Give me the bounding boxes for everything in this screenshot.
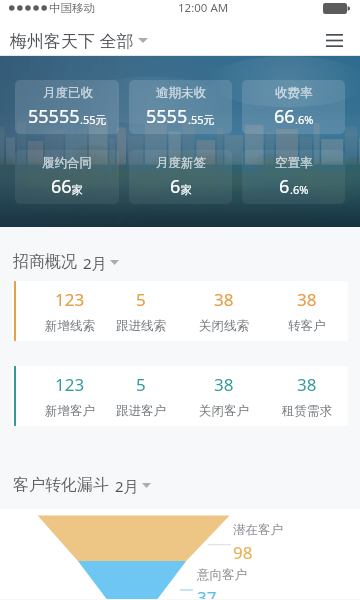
button[interactable]: 2月 xyxy=(115,474,151,496)
button[interactable]: 38 xyxy=(182,373,265,419)
button[interactable]: 38 xyxy=(265,288,348,334)
staticText: 月度已收 xyxy=(43,85,93,101)
staticText: 中国移动 xyxy=(49,1,95,15)
staticText: 38 xyxy=(297,288,317,311)
staticText: 逾期未收 xyxy=(156,85,206,101)
staticText: 家 xyxy=(72,183,83,197)
staticText: 66 xyxy=(51,174,72,199)
staticText: 6 xyxy=(170,174,181,199)
button[interactable]: 38 xyxy=(265,373,348,419)
staticText: 38 xyxy=(214,373,234,396)
staticText: 客户转化漏斗 xyxy=(13,475,109,495)
staticText: .55元 xyxy=(188,112,215,127)
staticText: 38 xyxy=(297,373,317,396)
staticText: 2月 xyxy=(83,253,107,271)
staticText: 37 xyxy=(197,586,217,599)
button[interactable]: 38 xyxy=(182,288,265,334)
staticText: 123 xyxy=(55,373,85,396)
staticText: .6% xyxy=(295,112,314,127)
staticText: 关闭线索 xyxy=(199,318,249,334)
button[interactable]: 月度新签 xyxy=(129,150,232,204)
staticText: 月度新签 xyxy=(156,155,206,171)
staticText: 12:00 AM xyxy=(178,0,229,16)
staticText: 家 xyxy=(181,183,192,197)
staticText: 123 xyxy=(55,288,85,311)
staticText: 跟进客户 xyxy=(116,403,166,419)
staticText: 新增客户 xyxy=(45,403,95,419)
button[interactable]: 5 xyxy=(99,288,182,334)
staticText: 履约合同 xyxy=(42,155,92,171)
button[interactable]: 5 xyxy=(99,373,182,419)
staticText: 招商概况 xyxy=(13,252,77,272)
staticText: 收费率 xyxy=(275,85,313,101)
staticText: 潜在客户 xyxy=(233,522,283,538)
staticText: 租赁需求 xyxy=(282,403,332,419)
staticText: 98 xyxy=(233,541,253,564)
staticText: 梅州客天下 全部 xyxy=(10,29,134,51)
staticText: .55元 xyxy=(80,112,107,127)
staticText: 转客户 xyxy=(288,318,326,334)
button[interactable]: Menu xyxy=(321,27,347,53)
staticText: 5 xyxy=(136,373,146,396)
staticText: 意向客户 xyxy=(197,567,247,583)
staticText: 新增线索 xyxy=(45,318,95,334)
button[interactable]: 梅州客天下 全部 xyxy=(10,24,148,56)
button[interactable]: 空置率 xyxy=(242,150,345,204)
staticText: 跟进线索 xyxy=(116,318,166,334)
staticText: 38 xyxy=(214,288,234,311)
staticText: 空置率 xyxy=(275,155,313,171)
staticText: .6% xyxy=(290,182,309,197)
staticText: 5555 xyxy=(146,104,188,129)
staticText: 2月 xyxy=(115,476,139,494)
button[interactable]: 月度已收 xyxy=(15,80,119,134)
button[interactable]: 收费率 xyxy=(242,80,345,134)
button[interactable]: 123 xyxy=(16,288,99,334)
staticText: 5 xyxy=(136,288,146,311)
staticText: 55555 xyxy=(28,104,80,129)
button[interactable]: 逾期未收 xyxy=(129,80,232,134)
staticText: 66 xyxy=(274,104,295,129)
staticText: 6 xyxy=(279,174,290,199)
button[interactable]: 2月 xyxy=(83,251,119,273)
staticText: 关闭客户 xyxy=(199,403,249,419)
button[interactable]: 履约合同 xyxy=(15,150,119,204)
button[interactable]: 123 xyxy=(16,373,99,419)
